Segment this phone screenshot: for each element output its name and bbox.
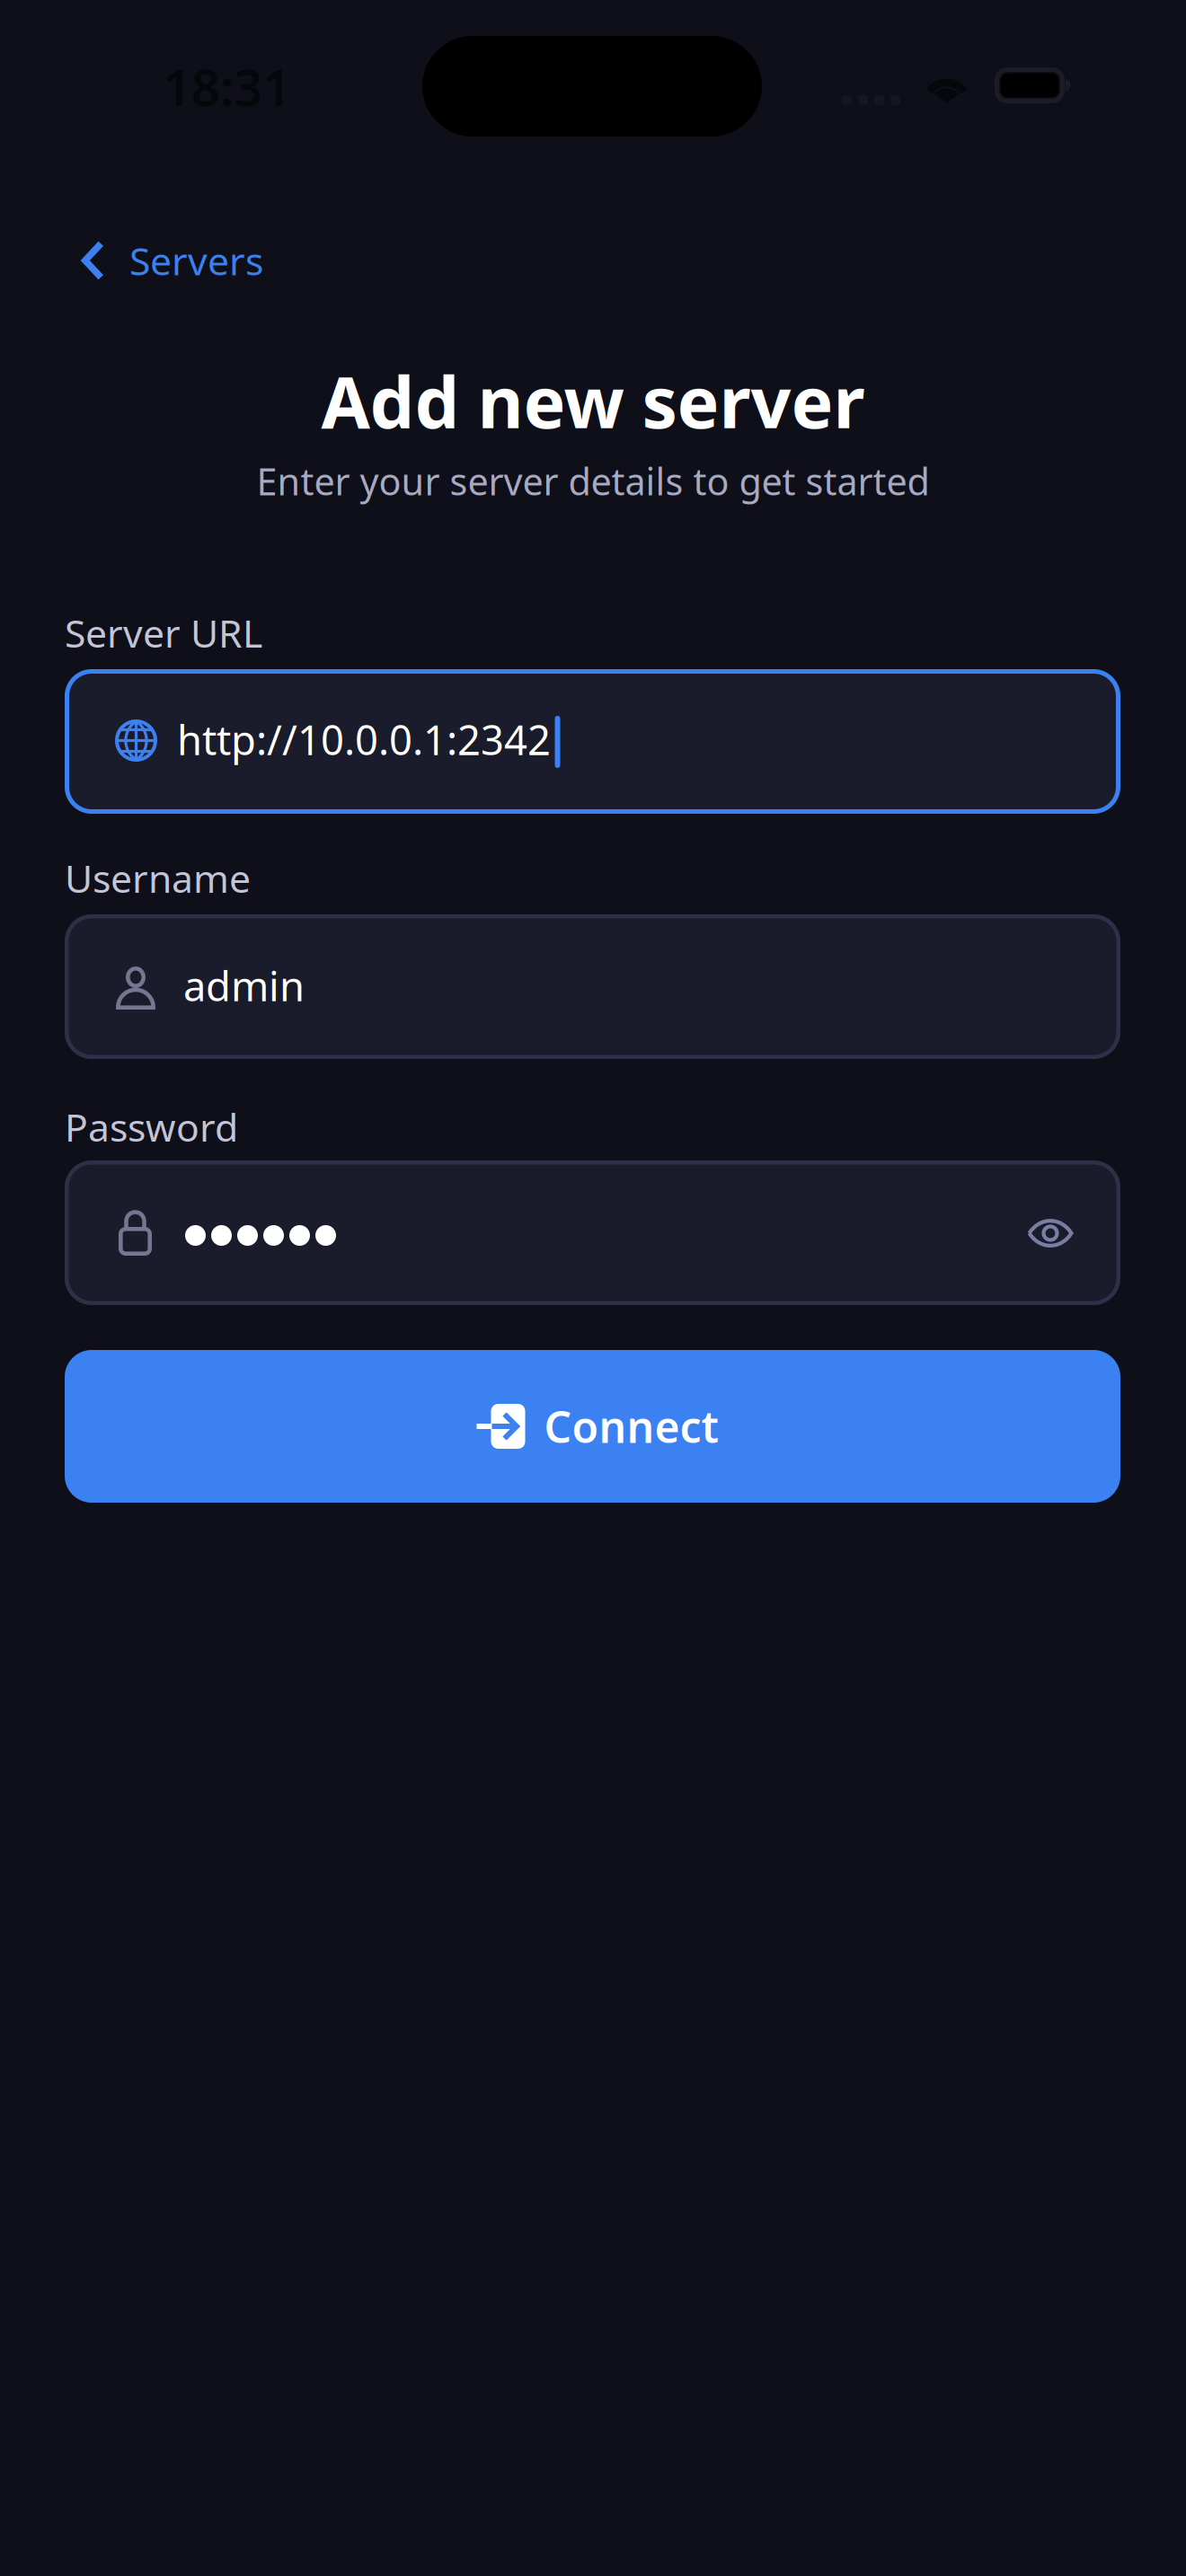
button[interactable]: Show password — [1011, 1194, 1090, 1273]
staticText: http://10.0.0.1:2342 — [177, 712, 551, 766]
button[interactable]: Servers — [0, 217, 359, 304]
staticText: Add new server — [321, 354, 865, 448]
staticText: admin — [183, 958, 305, 1012]
staticText: Enter your server details to get started — [257, 456, 929, 506]
staticText: Password — [65, 1101, 238, 1152]
staticText: Connect — [544, 1398, 718, 1455]
staticText: 18:31 — [163, 53, 291, 120]
staticText: Username — [65, 852, 251, 903]
button[interactable]: Connect — [65, 1350, 1120, 1503]
staticText: Server URL — [65, 607, 262, 658]
staticText: Servers — [129, 235, 263, 286]
